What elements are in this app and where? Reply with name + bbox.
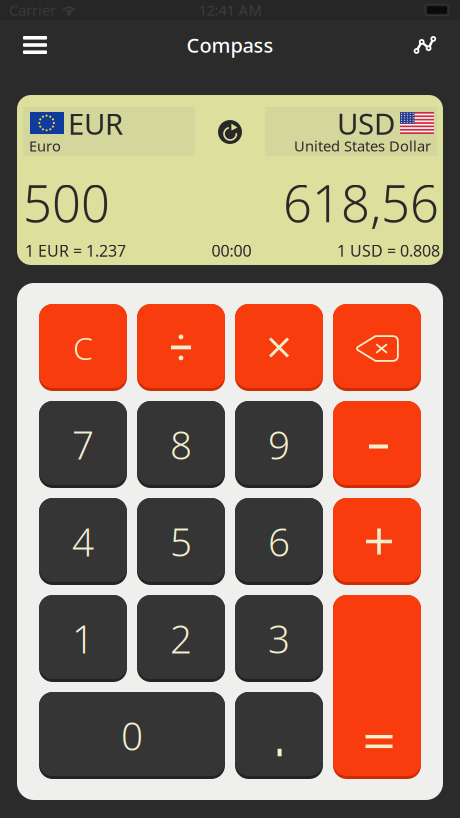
button[interactable]: 3 <box>235 595 323 682</box>
staticText: C <box>73 326 93 369</box>
staticText: United States Dollar <box>294 136 431 155</box>
staticText: 00:00 <box>211 240 251 261</box>
staticText: 0 <box>121 710 143 761</box>
button[interactable]: Minus <box>333 401 421 488</box>
button[interactable]: Menu <box>7 20 63 70</box>
staticText: 1 <box>72 613 94 664</box>
button[interactable]: Multiply <box>235 304 323 391</box>
staticText: 12:41 AM <box>198 0 261 20</box>
staticText: 6 <box>268 516 290 567</box>
staticText: Euro <box>29 136 61 155</box>
button[interactable]: Delete <box>333 304 421 391</box>
button[interactable]: Divide <box>137 304 225 391</box>
button[interactable]: Decimal point <box>235 692 323 779</box>
button[interactable]: 4 <box>39 498 127 585</box>
staticText: 1 USD = 0.808 <box>337 240 440 261</box>
button[interactable]: 2 <box>137 595 225 682</box>
staticText: 1 EUR = 1.237 <box>25 240 126 261</box>
staticText: Compass <box>186 32 273 58</box>
staticText: USD <box>337 104 395 143</box>
staticText: 2 <box>170 613 192 664</box>
button[interactable]: 8 <box>137 401 225 488</box>
staticText: 618,56 <box>283 169 439 236</box>
button[interactable]: C <box>39 304 127 391</box>
staticText: 8 <box>170 419 192 470</box>
button[interactable]: Charts <box>397 20 453 70</box>
button[interactable]: Swap currencies <box>218 120 242 144</box>
button[interactable]: Plus <box>333 498 421 585</box>
button[interactable]: 5 <box>137 498 225 585</box>
button[interactable]: 0 <box>39 692 225 779</box>
button[interactable]: EUR <box>23 107 195 156</box>
staticText: 9 <box>268 419 290 470</box>
staticText: EUR <box>68 104 123 143</box>
button[interactable]: Equals <box>333 595 421 779</box>
button[interactable]: 9 <box>235 401 323 488</box>
staticText: 5 <box>170 516 192 567</box>
button[interactable]: 7 <box>39 401 127 488</box>
staticText: 7 <box>72 419 94 470</box>
staticText: Carrier <box>9 0 56 20</box>
staticText: 3 <box>268 613 290 664</box>
staticText: 4 <box>72 516 94 567</box>
staticText: 500 <box>23 169 110 236</box>
button[interactable]: 6 <box>235 498 323 585</box>
button[interactable]: 1 <box>39 595 127 682</box>
button[interactable]: USD <box>265 107 437 156</box>
